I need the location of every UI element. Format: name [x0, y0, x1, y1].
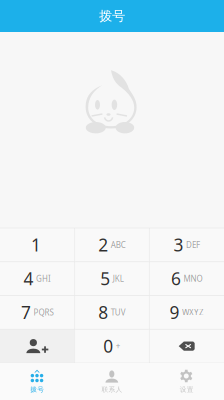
staticText: 6: [171, 267, 181, 290]
staticText: 1: [31, 233, 41, 256]
staticText: 联系人: [101, 385, 122, 394]
staticText: 设置: [180, 385, 194, 394]
button[interactable]: 1: [0, 228, 75, 262]
staticText: DEF: [186, 240, 200, 250]
staticText: WXYZ: [182, 307, 204, 318]
staticText: MNO: [183, 273, 202, 284]
staticText: 7: [21, 301, 31, 324]
button[interactable]: 设置: [149, 363, 224, 400]
button[interactable]: 5: [75, 262, 149, 296]
staticText: ABC: [111, 240, 126, 250]
staticText: 0: [103, 335, 113, 358]
button[interactable]: 联系人: [75, 363, 149, 400]
button[interactable]: 2: [75, 228, 149, 262]
button[interactable]: 9: [149, 295, 224, 329]
staticText: TUV: [111, 307, 126, 318]
button[interactable]: 6: [149, 262, 224, 296]
staticText: 5: [100, 267, 110, 290]
staticText: +: [116, 341, 121, 351]
button[interactable]: 3: [149, 228, 224, 262]
button[interactable]: Add contact: [0, 329, 75, 363]
staticText: 9: [169, 301, 179, 324]
button[interactable]: 0: [75, 329, 149, 363]
staticText: 3: [173, 233, 183, 256]
button[interactable]: Delete: [149, 329, 224, 363]
button[interactable]: 拨号: [0, 363, 75, 400]
staticText: JKL: [113, 273, 124, 284]
staticText: GHI: [36, 273, 51, 284]
button[interactable]: 7: [0, 295, 75, 329]
staticText: 拨号: [99, 8, 125, 24]
staticText: 2: [98, 233, 108, 256]
staticText: PQRS: [34, 307, 54, 318]
staticText: 8: [98, 301, 108, 324]
staticText: 拨号: [30, 385, 44, 394]
staticText: 4: [24, 267, 34, 290]
button[interactable]: 4: [0, 262, 75, 296]
button[interactable]: 8: [75, 295, 149, 329]
